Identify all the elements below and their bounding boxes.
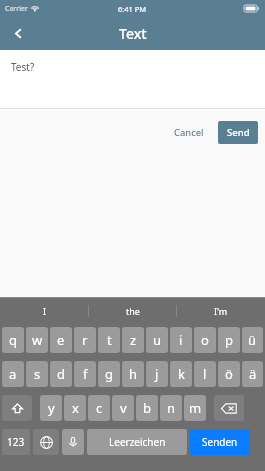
staticText: e (57, 331, 65, 349)
button[interactable]: o (194, 327, 216, 353)
button[interactable]: ä (242, 361, 263, 387)
staticText: i (179, 331, 183, 349)
button[interactable]: ö (218, 361, 240, 387)
staticText: k (178, 365, 185, 383)
staticText: v (120, 399, 127, 417)
staticText: I (43, 305, 47, 317)
button[interactable]: j (146, 361, 168, 387)
button[interactable]: r (74, 327, 96, 353)
staticText: Leerzeichen (109, 435, 166, 449)
button[interactable]: Dictate (62, 429, 84, 455)
button[interactable]: f (74, 361, 96, 387)
staticText: y (48, 399, 55, 417)
staticText: b (143, 399, 151, 417)
staticText: q (9, 331, 17, 349)
button[interactable]: l (194, 361, 216, 387)
staticText: u (153, 331, 162, 349)
button[interactable]: t (98, 327, 120, 353)
staticText: ä (249, 365, 257, 383)
button[interactable]: x (64, 395, 86, 421)
staticText: ö (225, 365, 233, 383)
button[interactable]: d (50, 361, 72, 387)
button[interactable]: I'm (177, 298, 265, 323)
button[interactable]: Cancel (166, 121, 212, 144)
button[interactable]: g (98, 361, 120, 387)
staticText: ü (248, 331, 257, 349)
button[interactable]: Backspace (214, 395, 244, 421)
button[interactable]: w (26, 327, 48, 353)
button[interactable]: I (0, 298, 89, 323)
button[interactable]: y (40, 395, 62, 421)
staticText: the (126, 305, 140, 317)
staticText: Senden (202, 435, 238, 449)
staticText: m (189, 399, 202, 417)
staticText: o (201, 331, 209, 349)
button[interactable]: a (2, 361, 24, 387)
button[interactable]: e (50, 327, 72, 353)
button[interactable]: c (88, 395, 110, 421)
staticText: I'm (214, 305, 228, 317)
button[interactable]: Shift (2, 395, 32, 421)
staticText: r (82, 331, 88, 349)
button[interactable]: 123 (2, 429, 30, 455)
staticText: l (203, 365, 207, 383)
staticText: z (130, 331, 137, 349)
button[interactable]: z (122, 327, 144, 353)
button[interactable]: ü (242, 327, 263, 353)
staticText: p (225, 331, 233, 349)
staticText: 123 (7, 435, 25, 449)
button[interactable]: n (160, 395, 182, 421)
button[interactable]: p (218, 327, 240, 353)
button[interactable]: b (136, 395, 158, 421)
staticText: Send (227, 126, 250, 139)
staticText: s (34, 365, 41, 383)
button[interactable]: Send (218, 121, 258, 144)
button[interactable]: Senden (190, 429, 250, 455)
button[interactable]: u (146, 327, 168, 353)
staticText: 6:41 PM (118, 4, 147, 14)
staticText: Test? (11, 60, 35, 74)
staticText: w (32, 331, 43, 349)
staticText: n (167, 399, 176, 417)
button[interactable]: Leerzeichen (87, 429, 187, 455)
staticText: h (129, 365, 138, 383)
staticText: g (105, 365, 113, 383)
button[interactable]: h (122, 361, 144, 387)
staticText: x (72, 399, 79, 417)
button[interactable]: q (2, 327, 24, 353)
button[interactable]: i (170, 327, 192, 353)
button[interactable]: Change keyboard (33, 429, 59, 455)
staticText: Carrier (5, 4, 28, 14)
button[interactable]: the (89, 298, 177, 323)
staticText: j (155, 365, 159, 383)
button[interactable]: Back (0, 17, 36, 50)
button[interactable]: k (170, 361, 192, 387)
staticText: t (107, 331, 112, 349)
button[interactable]: s (26, 361, 48, 387)
staticText: f (83, 365, 88, 383)
button[interactable]: Test? (0, 50, 265, 108)
staticText: a (9, 365, 17, 383)
button[interactable]: v (112, 395, 134, 421)
staticText: Cancel (174, 126, 204, 139)
staticText: Text (119, 24, 147, 43)
staticText: d (57, 365, 65, 383)
button[interactable]: m (184, 395, 206, 421)
staticText: c (96, 399, 103, 417)
